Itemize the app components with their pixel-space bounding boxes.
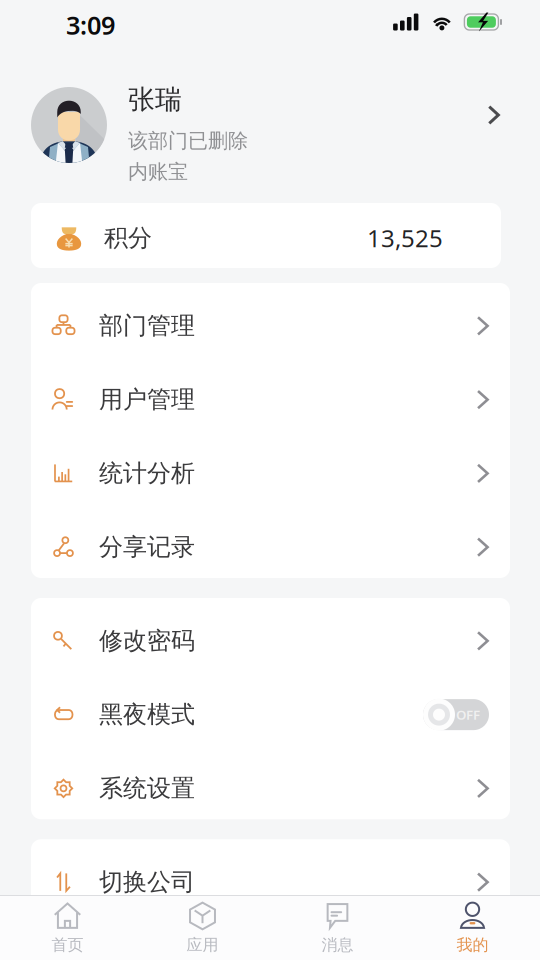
- staticText: 该部门已删除: [128, 128, 248, 153]
- staticText: 内账宝: [128, 159, 188, 184]
- button[interactable]: 首页: [0, 896, 135, 960]
- button[interactable]: 用户管理: [31, 357, 510, 431]
- button[interactable]: 修改密码: [31, 598, 510, 672]
- staticText: 应用: [186, 935, 218, 955]
- button[interactable]: 我的: [405, 896, 540, 960]
- button[interactable]: 统计分析: [31, 430, 510, 504]
- staticText: 系统设置: [99, 774, 195, 803]
- staticText: 黑夜模式: [99, 700, 195, 729]
- button[interactable]: 应用: [135, 896, 270, 960]
- button[interactable]: 部门管理: [31, 283, 510, 357]
- staticText: OFF: [456, 706, 480, 723]
- button[interactable]: 切换公司: [31, 839, 510, 913]
- staticText: 13,525: [367, 222, 443, 254]
- staticText: 切换公司: [99, 867, 195, 897]
- staticText: 消息: [321, 935, 353, 955]
- staticText: 分享记录: [99, 532, 195, 562]
- button[interactable]: 系统设置: [31, 745, 510, 819]
- staticText: 部门管理: [99, 311, 195, 341]
- button[interactable]: 黑夜模式: [31, 672, 510, 746]
- staticText: 首页: [51, 935, 83, 955]
- button[interactable]: 分享记录: [31, 504, 510, 578]
- button[interactable]: 张瑞: [0, 50, 540, 195]
- staticText: 修改密码: [99, 626, 195, 656]
- staticText: 积分: [104, 223, 152, 253]
- staticText: 统计分析: [99, 459, 195, 488]
- staticText: 张瑞: [128, 83, 182, 116]
- button[interactable]: 积分: [31, 203, 501, 268]
- button[interactable]: 消息: [270, 896, 405, 960]
- staticText: 用户管理: [99, 385, 195, 414]
- staticText: 3:09: [66, 8, 115, 42]
- staticText: 我的: [456, 935, 488, 955]
